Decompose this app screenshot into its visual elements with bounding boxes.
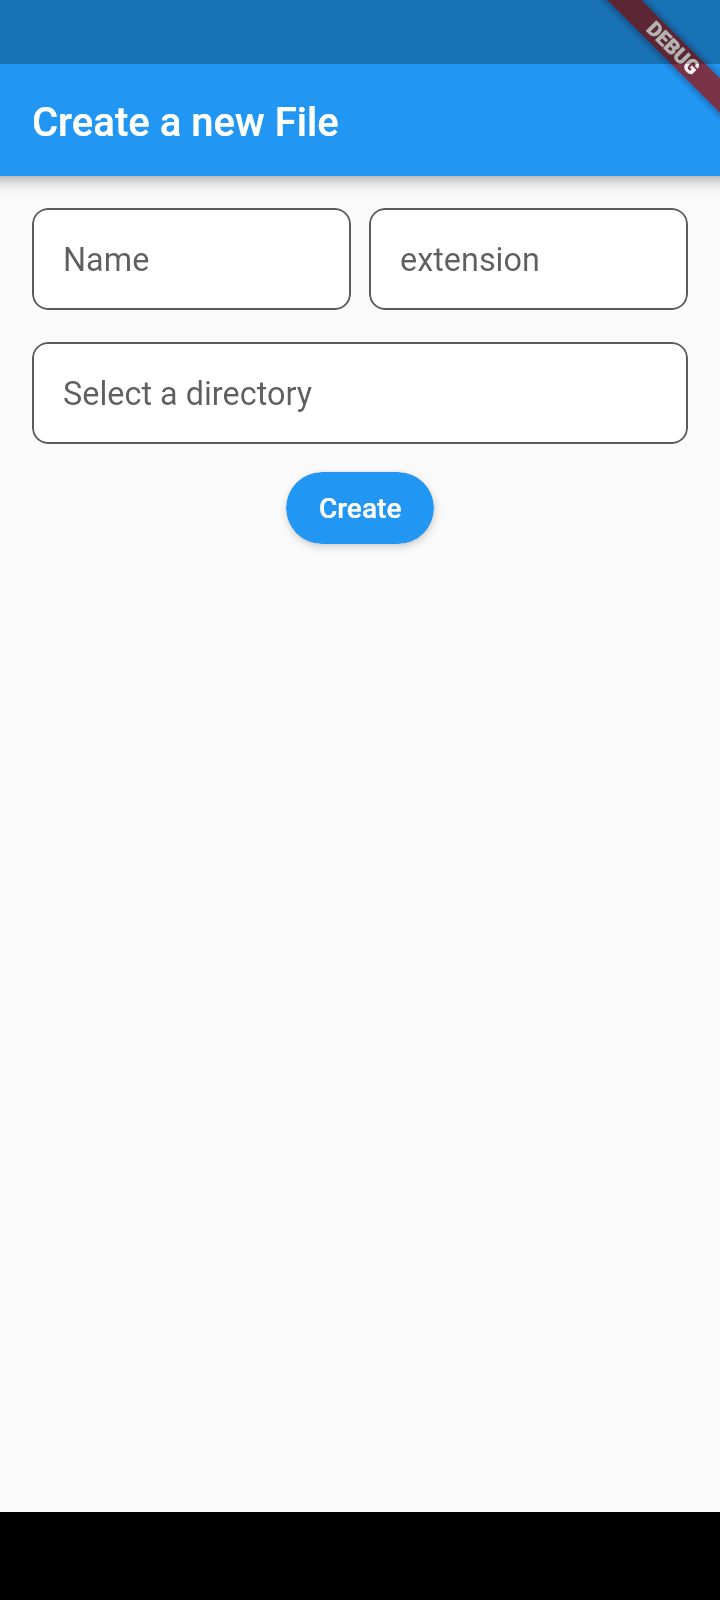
staticText: Select a directory — [63, 375, 312, 413]
button[interactable]: Select a directory — [32, 342, 688, 444]
staticText: Create — [319, 492, 402, 525]
staticText: Name — [63, 241, 150, 279]
button[interactable]: Create — [286, 472, 434, 544]
staticText: extension — [400, 241, 540, 279]
button[interactable]: extension — [369, 208, 688, 310]
button[interactable]: Name — [32, 208, 351, 310]
staticText: Create a new File — [32, 99, 339, 146]
